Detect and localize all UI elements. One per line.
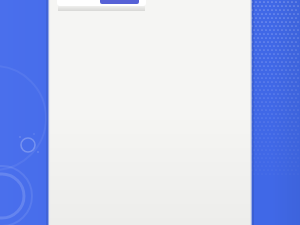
button[interactable]: Continue [100,0,139,4]
button[interactable]: Continue [57,0,146,6]
